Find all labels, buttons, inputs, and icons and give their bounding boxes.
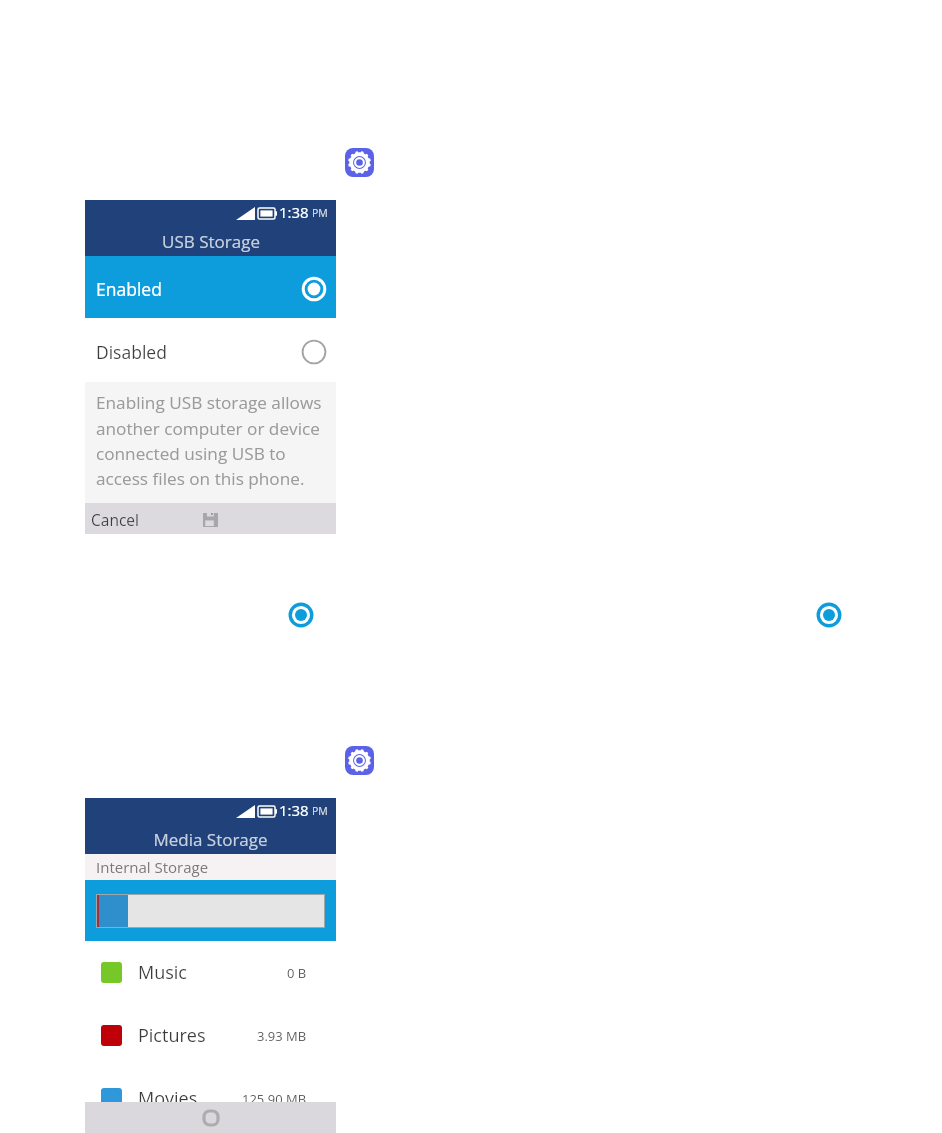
button[interactable]: Settings bbox=[345, 148, 374, 177]
staticText: Movies bbox=[138, 1086, 198, 1111]
button[interactable]: Music bbox=[85, 941, 336, 1004]
staticText: 1:38 bbox=[279, 800, 309, 820]
button[interactable]: Movies bbox=[85, 1067, 336, 1130]
staticText: Pictures bbox=[138, 1023, 206, 1048]
staticText: PM bbox=[312, 206, 328, 220]
staticText: USB Storage bbox=[162, 230, 260, 253]
staticText: 125.90 MB bbox=[242, 1090, 307, 1108]
button[interactable]: Page indicator bbox=[815, 601, 843, 629]
button[interactable]: Pictures bbox=[85, 1004, 336, 1067]
button[interactable]: Page indicator bbox=[287, 601, 315, 629]
staticText: Enabled bbox=[96, 277, 162, 301]
button[interactable]: Home bbox=[198, 1105, 224, 1131]
staticText: Media Storage bbox=[153, 828, 268, 851]
button[interactable]: Enabled bbox=[85, 256, 336, 318]
staticText: Cancel bbox=[91, 509, 139, 528]
button[interactable]: Disabled bbox=[85, 318, 336, 382]
staticText: 1:38 bbox=[279, 202, 309, 222]
staticText: Music bbox=[138, 960, 187, 985]
staticText: Internal Storage bbox=[96, 857, 209, 877]
staticText: Disabled bbox=[96, 340, 167, 364]
button[interactable]: Cancel bbox=[85, 503, 149, 534]
button[interactable]: Settings bbox=[345, 746, 374, 775]
staticText: 0 B bbox=[287, 964, 307, 982]
button[interactable]: Save bbox=[198, 508, 222, 532]
staticText: Enabling USB storage allows another comp… bbox=[96, 391, 322, 490]
staticText: 3.93 MB bbox=[257, 1027, 307, 1045]
staticText: PM bbox=[312, 804, 328, 818]
